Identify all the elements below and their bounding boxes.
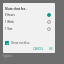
staticText: CANCEL	[33, 47, 44, 51]
button[interactable]: Show notifica..	[3, 39, 55, 46]
staticText: 8 Hours	[5, 13, 15, 17]
button[interactable]: 8 Hours	[3, 11, 55, 18]
staticText: 1 Week	[5, 20, 14, 24]
button[interactable]: CANCEL	[32, 46, 45, 52]
staticText: Type a	[3, 54, 12, 58]
staticText: Mute chat for...	[5, 7, 27, 11]
button[interactable]: 1 Week	[3, 18, 55, 25]
staticText: Show notifica..	[11, 41, 31, 45]
button[interactable]: 1 Year	[3, 25, 55, 32]
button[interactable]: OK	[48, 46, 54, 52]
staticText: OK	[49, 47, 53, 51]
staticText: 1 Year	[5, 27, 13, 31]
